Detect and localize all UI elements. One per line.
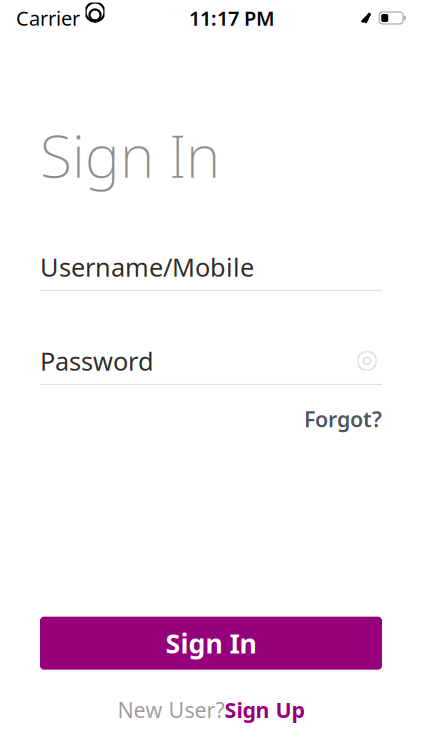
- staticText: Sign In: [165, 625, 256, 661]
- staticText: New User?: [117, 696, 224, 724]
- button[interactable]: Show password: [352, 346, 382, 376]
- button[interactable]: New User?: [117, 690, 304, 730]
- staticText: Password: [40, 344, 154, 378]
- staticText: 11:17 PM: [189, 5, 275, 31]
- staticText: Forgot?: [304, 405, 382, 433]
- staticText: Sign In: [40, 116, 220, 194]
- staticText: Sign Up: [224, 696, 304, 724]
- button[interactable]: Sign In: [40, 617, 382, 670]
- button[interactable]: Forgot?: [304, 401, 382, 437]
- staticText: Username/Mobile: [40, 250, 254, 284]
- staticText: Carrier: [16, 5, 80, 31]
